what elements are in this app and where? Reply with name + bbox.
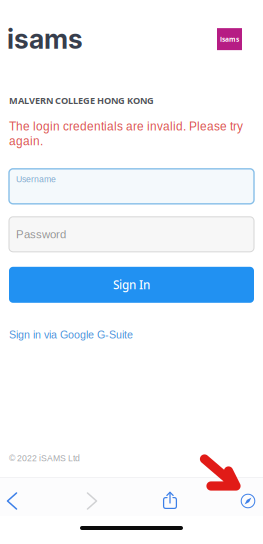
staticText: The login credentials are invalid. Pleas… (9, 120, 243, 148)
button[interactable]: Sign In (9, 267, 254, 303)
staticText: Sign In (113, 277, 150, 293)
staticText: isams (220, 35, 239, 44)
staticText: isams (7, 23, 83, 55)
button[interactable]: Tabs (231, 478, 263, 516)
staticText: Username (16, 174, 56, 184)
staticText: Sign in via Google G-Suite (9, 329, 133, 341)
button[interactable]: Share (153, 478, 187, 516)
button[interactable]: Forward (75, 478, 109, 516)
staticText: MALVERN COLLEGE HONG KONG (9, 94, 154, 107)
button[interactable]: Sign in via Google G-Suite (0, 303, 142, 343)
button[interactable]: Back (0, 478, 29, 516)
staticText: Password (16, 228, 66, 241)
staticText: © 2022 iSAMS Ltd (9, 453, 80, 463)
